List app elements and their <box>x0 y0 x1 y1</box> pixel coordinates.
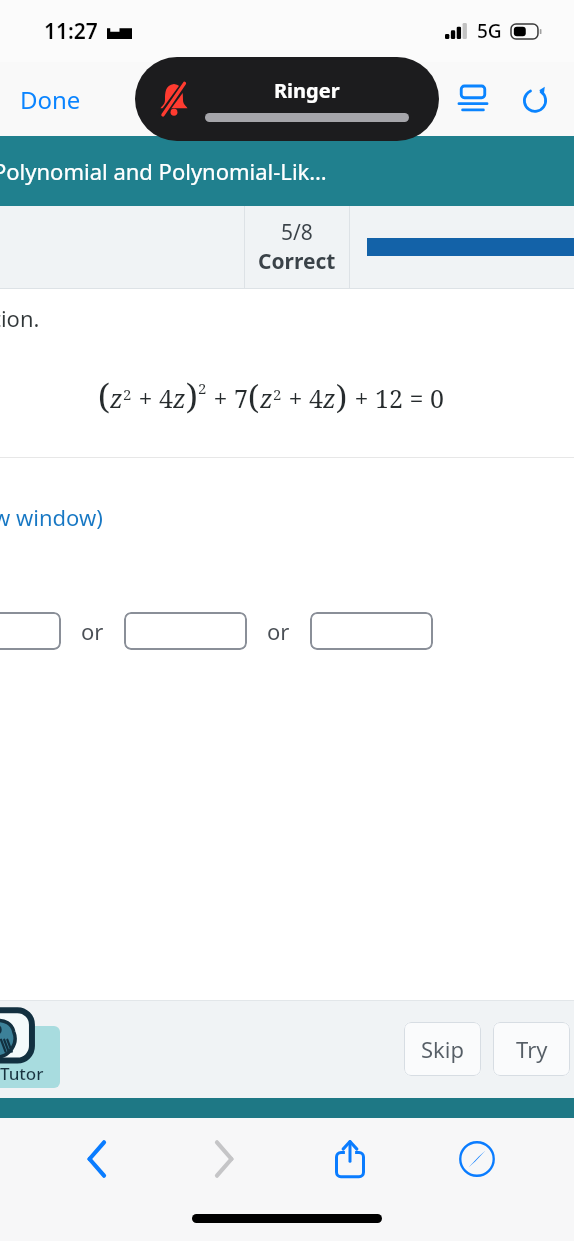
staticText: 5G <box>477 18 502 44</box>
staticText: 2 <box>123 384 132 404</box>
staticText: + 7 <box>207 381 248 415</box>
staticText: ( <box>248 375 260 419</box>
button[interactable]: Reload page <box>512 76 558 122</box>
staticText: + 4 <box>132 381 173 415</box>
button[interactable]: Reader view <box>450 76 496 122</box>
staticText: ( <box>98 373 110 419</box>
button[interactable]: Answer input <box>0 612 61 650</box>
staticText: 5/8 <box>281 218 313 247</box>
button[interactable]: w window) <box>0 502 103 532</box>
staticText: tion. <box>0 303 40 333</box>
staticText: Skip <box>421 1034 465 1064</box>
staticText: Correct <box>258 247 336 276</box>
staticText: Tutor <box>0 1062 44 1085</box>
button[interactable]: Ringer <box>135 57 439 141</box>
staticText: ) <box>336 375 348 419</box>
button[interactable]: Back <box>68 1130 126 1188</box>
staticText: z <box>323 381 336 415</box>
staticText: 2 <box>198 378 207 398</box>
staticText: z <box>260 381 273 415</box>
button[interactable]: Answer input <box>124 612 247 650</box>
staticText: 11:27 <box>44 17 98 46</box>
staticText: + 12 = 0 <box>348 381 444 415</box>
staticText: Done <box>20 83 81 116</box>
staticText: z <box>110 381 123 415</box>
staticText: or <box>267 616 290 646</box>
button[interactable]: Share <box>321 1130 379 1188</box>
button[interactable]: Try <box>493 1022 570 1076</box>
staticText: Ringer <box>274 77 340 104</box>
button[interactable]: Forward <box>195 1130 253 1188</box>
button[interactable]: Open in Safari <box>448 1130 506 1188</box>
staticText: Polynomial and Polynomial-Lik… <box>0 156 327 186</box>
staticText: Try <box>516 1034 548 1064</box>
staticText: ) <box>186 373 198 419</box>
button[interactable]: Answer input <box>310 612 433 650</box>
staticText: or <box>81 616 104 646</box>
button[interactable]: Skip <box>404 1022 481 1076</box>
staticText: z <box>173 381 186 415</box>
staticText: 2 <box>273 384 282 404</box>
button[interactable]: Done <box>0 73 101 126</box>
staticText: + 4 <box>282 381 323 415</box>
button[interactable]: Tutor <box>0 1026 60 1088</box>
